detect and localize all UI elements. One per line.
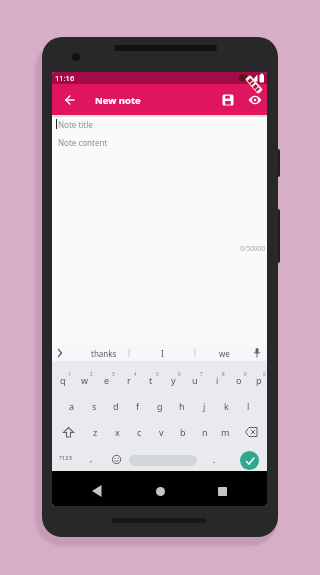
staticText: 1	[68, 371, 71, 377]
button[interactable]: o	[228, 367, 250, 393]
staticText: 9	[244, 371, 247, 377]
staticText: 6	[178, 371, 181, 377]
staticText: 4	[134, 371, 137, 377]
staticText: q	[60, 374, 66, 386]
staticText: 0	[263, 371, 266, 377]
button[interactable]: w	[74, 367, 96, 393]
button[interactable]: I	[129, 345, 195, 361]
button[interactable]: thanks	[78, 345, 129, 361]
staticText: e	[104, 374, 110, 386]
staticText: a	[69, 400, 75, 412]
button[interactable]: m	[216, 419, 235, 445]
button[interactable]: ,	[79, 445, 103, 471]
button[interactable]: Note title	[58, 119, 267, 131]
button[interactable]: x	[106, 419, 128, 445]
button[interactable]: f	[127, 393, 149, 419]
button[interactable]	[129, 447, 197, 473]
staticText: i	[216, 374, 219, 386]
button[interactable]: b	[172, 419, 194, 445]
staticText: y	[171, 374, 176, 386]
button[interactable]	[247, 92, 263, 108]
button[interactable]: we	[195, 345, 254, 361]
staticText: ?123	[59, 454, 72, 462]
staticText: p	[256, 374, 262, 386]
button[interactable]	[60, 90, 79, 109]
staticText: k	[224, 400, 229, 412]
staticText: 5	[156, 371, 159, 377]
button[interactable]	[143, 479, 177, 503]
staticText: New note	[95, 94, 141, 107]
button[interactable]	[80, 479, 114, 503]
button[interactable]: j	[193, 393, 215, 419]
button[interactable]	[231, 447, 267, 473]
button[interactable]: .	[197, 446, 231, 472]
staticText: 2	[90, 371, 93, 377]
button[interactable]: u	[184, 367, 206, 393]
button[interactable]: a	[61, 393, 83, 419]
staticText: 3	[112, 371, 115, 377]
staticText: thanks	[91, 348, 117, 359]
button[interactable]: n	[194, 419, 216, 445]
button[interactable]: r	[118, 367, 140, 393]
staticText: l	[247, 400, 250, 412]
staticText: h	[179, 400, 185, 412]
staticText: t	[149, 374, 153, 386]
staticText: z	[93, 426, 98, 438]
button[interactable]: e	[96, 367, 118, 393]
button[interactable]: p	[250, 367, 267, 393]
button[interactable]	[52, 419, 84, 445]
button[interactable]: q	[52, 367, 74, 393]
button[interactable]: h	[171, 393, 193, 419]
staticText: Note content	[58, 137, 108, 148]
staticText: n	[202, 426, 208, 438]
staticText: g	[157, 400, 163, 412]
staticText: I	[161, 348, 164, 359]
button[interactable]: g	[149, 393, 171, 419]
staticText: 0/50000	[52, 244, 265, 253]
button[interactable]	[235, 419, 267, 445]
staticText: b	[180, 426, 186, 438]
staticText: 7	[200, 371, 203, 377]
staticText: d	[113, 400, 119, 412]
button[interactable]: t	[140, 367, 162, 393]
staticText: j	[203, 400, 206, 412]
staticText: v	[159, 426, 164, 438]
button[interactable]: c	[128, 419, 150, 445]
button[interactable]: s	[83, 393, 105, 419]
button[interactable]: d	[105, 393, 127, 419]
staticText: we	[219, 348, 230, 359]
staticText: .	[213, 453, 216, 465]
staticText: o	[236, 374, 242, 386]
button[interactable]: z	[84, 419, 106, 445]
staticText: s	[92, 400, 97, 412]
button[interactable]: k	[215, 393, 237, 419]
staticText: f	[136, 400, 140, 412]
staticText: 8	[222, 371, 225, 377]
staticText: w	[81, 374, 89, 386]
staticText: ,	[90, 452, 93, 464]
button[interactable]	[205, 479, 239, 503]
staticText: m	[221, 426, 230, 438]
staticText: r	[127, 374, 131, 386]
button[interactable]: Note content	[58, 137, 267, 149]
staticText: u	[192, 374, 198, 386]
button[interactable]: ?123	[52, 445, 79, 471]
button[interactable]: v	[150, 419, 172, 445]
button[interactable]: y	[162, 367, 184, 393]
staticText: Note title	[58, 119, 93, 130]
button[interactable]: l	[237, 393, 259, 419]
staticText: 11:16	[55, 73, 75, 83]
button[interactable]: i	[206, 367, 228, 393]
button[interactable]	[103, 446, 129, 472]
staticText: x	[115, 426, 120, 438]
staticText: c	[137, 426, 142, 438]
button[interactable]	[220, 92, 236, 108]
